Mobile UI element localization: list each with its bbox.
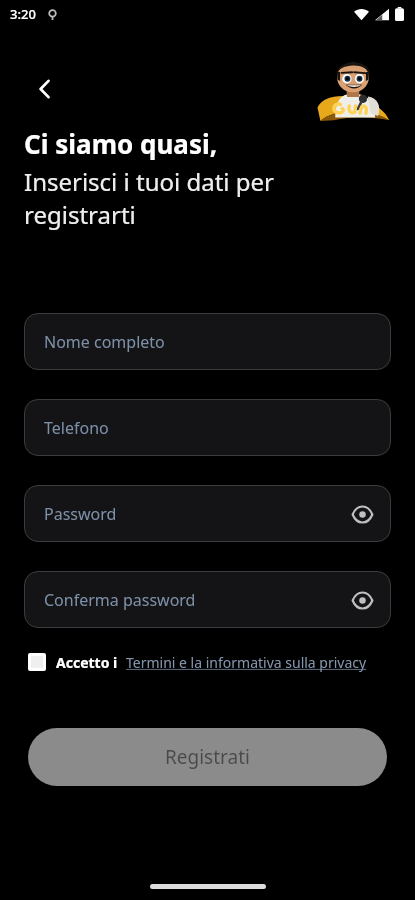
staticText: Registrati (165, 744, 250, 770)
button[interactable]: Termini e la informativa sulla privacy (126, 653, 367, 672)
button[interactable]: Telefono (24, 399, 391, 456)
staticText: Inserisci i tuoi dati per registrarti (24, 165, 391, 231)
button[interactable]: Toggle password visibility (345, 497, 379, 531)
button[interactable]: Toggle password visibility (345, 583, 379, 617)
staticText: Accetto i (56, 653, 118, 672)
staticText: Password (44, 503, 117, 525)
staticText: 3:20 (10, 5, 36, 23)
staticText: Ci siamo quasi, (24, 126, 218, 161)
staticText: Nome completo (44, 331, 165, 353)
staticText: Termini e la informativa sulla privacy (126, 653, 367, 672)
staticText: Telefono (44, 417, 109, 439)
button[interactable]: Conferma password (24, 571, 391, 628)
button[interactable]: Accept terms checkbox (24, 649, 50, 675)
button[interactable]: Registrati (28, 728, 387, 786)
button[interactable]: Nome completo (24, 313, 391, 370)
staticText: Conferma password (44, 589, 196, 611)
button[interactable]: Password (24, 485, 391, 542)
button[interactable]: Back (24, 68, 66, 110)
